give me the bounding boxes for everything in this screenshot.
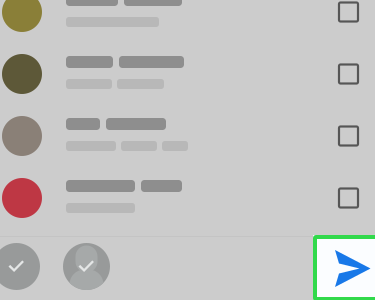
button[interactable] [0,43,375,105]
button[interactable]: Selected recipient [63,243,110,290]
button[interactable] [0,0,375,43]
button[interactable] [0,105,375,167]
button[interactable]: Send [313,235,375,298]
button[interactable] [0,167,375,229]
button[interactable]: Selected recipient [0,243,40,290]
